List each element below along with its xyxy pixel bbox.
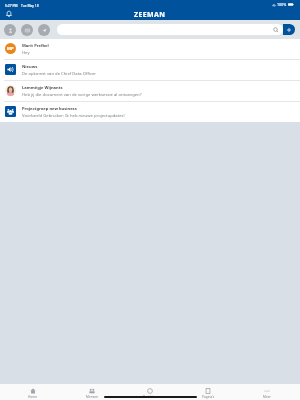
button[interactable]: Messages: [21, 24, 33, 36]
button[interactable]: Home: [8, 384, 58, 400]
staticText: Meer: [263, 395, 271, 399]
button[interactable]: Nieuws: [0, 60, 300, 80]
staticText: De opkomst van de Chief Data Officer: [22, 71, 96, 77]
staticText: 100%: [277, 2, 287, 7]
button[interactable]: MP: [0, 39, 300, 59]
staticText: Pagina's: [202, 395, 215, 399]
staticText: MP: [7, 46, 14, 52]
staticText: Heb jij die document van de vorige werks…: [22, 92, 142, 98]
staticText: Lammègje Wijnants: [22, 85, 63, 91]
button[interactable]: Berichten: [125, 384, 175, 400]
button[interactable]: Profile: [4, 24, 16, 36]
button[interactable]: Add: [283, 24, 295, 35]
staticText: Mensen: [86, 395, 98, 399]
button[interactable]: Meer: [242, 384, 292, 400]
staticText: Home: [28, 395, 38, 399]
staticText: Berichten: [143, 395, 158, 399]
button[interactable]: Notifications: [5, 10, 13, 18]
button[interactable]: Send: [38, 24, 50, 36]
staticText: Voorbeeld Gebruiker: Ik heb nieuwe proje…: [22, 113, 125, 119]
staticText: ZEEMAN: [134, 10, 166, 20]
staticText: Projectgroep new business: [22, 106, 77, 112]
button[interactable]: [57, 24, 283, 35]
staticText: Hey: [22, 50, 30, 56]
staticText: Marit Prefbel: [22, 43, 49, 49]
button[interactable]: Projectgroep new business: [0, 102, 300, 122]
staticText: Tue May 18: [21, 3, 39, 7]
staticText: Nieuws: [22, 64, 38, 70]
staticText: 5:27 PM: [5, 3, 18, 7]
button[interactable]: Mensen: [67, 384, 117, 400]
button[interactable]: Lammègje Wijnants: [0, 81, 300, 101]
button[interactable]: Pagina's: [183, 384, 233, 400]
